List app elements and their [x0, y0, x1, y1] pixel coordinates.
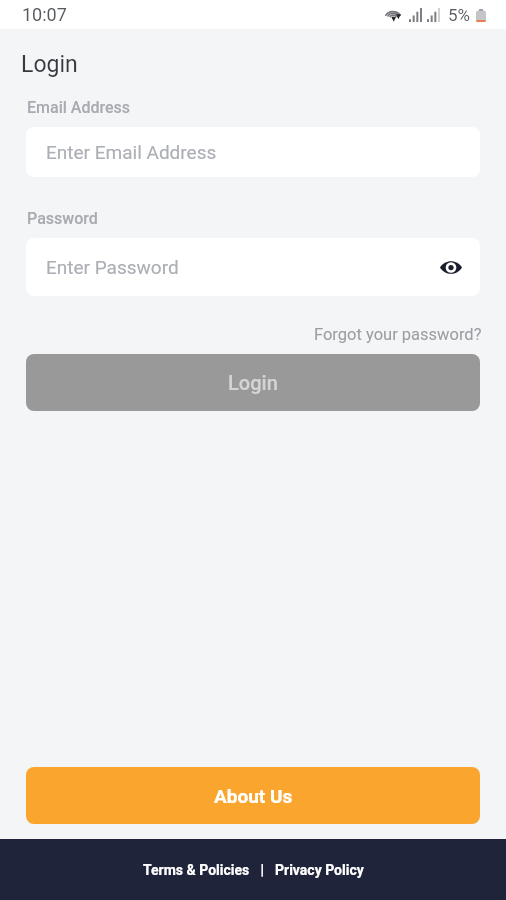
- staticText: Password: [27, 209, 98, 228]
- staticText: 10:07: [22, 4, 67, 25]
- staticText: Privacy Policy: [275, 862, 364, 878]
- staticText: |: [250, 862, 275, 878]
- staticText: Terms & Policies: [143, 862, 250, 878]
- button[interactable]: Login: [26, 354, 480, 411]
- staticText: About Us: [214, 785, 293, 807]
- staticText: Email Address: [27, 98, 131, 117]
- staticText: Login: [21, 51, 78, 78]
- button[interactable]: About Us: [26, 767, 480, 824]
- staticText: Login: [228, 371, 278, 394]
- staticText: Enter Password: [46, 256, 179, 278]
- staticText: Forgot your password?: [314, 325, 482, 344]
- button[interactable]: Privacy Policy: [275, 862, 364, 878]
- staticText: 5%: [448, 5, 471, 25]
- staticText: Enter Email Address: [46, 141, 217, 163]
- button[interactable]: Forgot your password?: [314, 325, 482, 344]
- button[interactable]: Show password: [434, 250, 468, 284]
- button[interactable]: Terms & Policies: [143, 862, 250, 878]
- button[interactable]: Enter Password: [26, 238, 480, 296]
- button[interactable]: Enter Email Address: [26, 127, 480, 177]
